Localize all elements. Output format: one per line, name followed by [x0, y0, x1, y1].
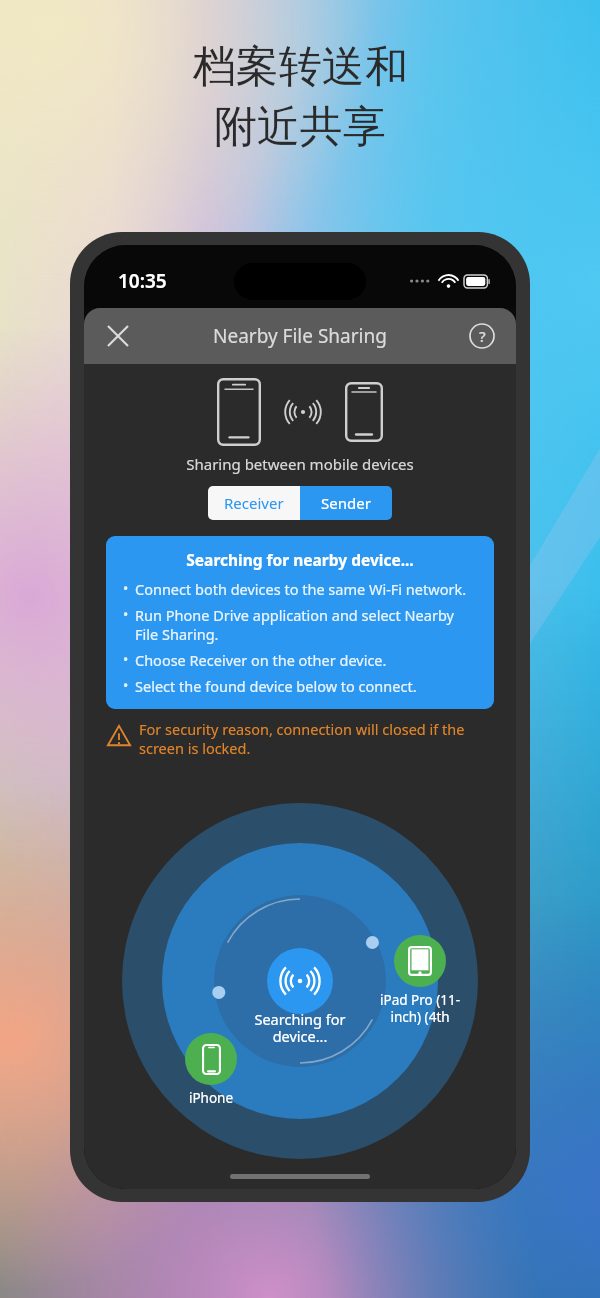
staticText: Nearby File Sharing [213, 323, 387, 349]
staticText: 附近共享 [214, 100, 386, 154]
staticText: Sharing between mobile devices [84, 454, 516, 474]
staticText: Connect both devices to the same Wi-Fi n… [135, 579, 467, 599]
staticText: Choose Receiver on the other device. [135, 650, 387, 670]
button[interactable]: Help [462, 316, 502, 356]
staticText: For security reason, connection will clo… [139, 719, 498, 758]
button[interactable]: iPad Pro (11-inch) (4th [370, 935, 470, 1026]
staticText: • [123, 579, 129, 598]
staticText: 10:35 [118, 268, 167, 294]
staticText: • [123, 676, 129, 695]
button[interactable]: Receiver [208, 486, 300, 520]
button[interactable]: iPhone [166, 1033, 256, 1107]
staticText: Searching for nearby device... [120, 549, 480, 570]
staticText: Sender [321, 493, 371, 513]
staticText: Run Phone Drive application and select N… [135, 605, 480, 644]
staticText: 档案转送和 [193, 40, 408, 94]
staticText: iPhone [166, 1089, 256, 1107]
staticText: Select the found device below to connect… [135, 676, 417, 696]
button[interactable]: Close [98, 316, 138, 356]
staticText: Searching for device... [240, 1009, 360, 1046]
staticText: • [123, 605, 129, 624]
staticText: ? [479, 326, 486, 346]
staticText: • [123, 650, 129, 669]
button[interactable]: Sender [300, 486, 392, 520]
staticText: iPad Pro (11-inch) (4th [370, 991, 470, 1026]
staticText: Receiver [224, 493, 284, 513]
